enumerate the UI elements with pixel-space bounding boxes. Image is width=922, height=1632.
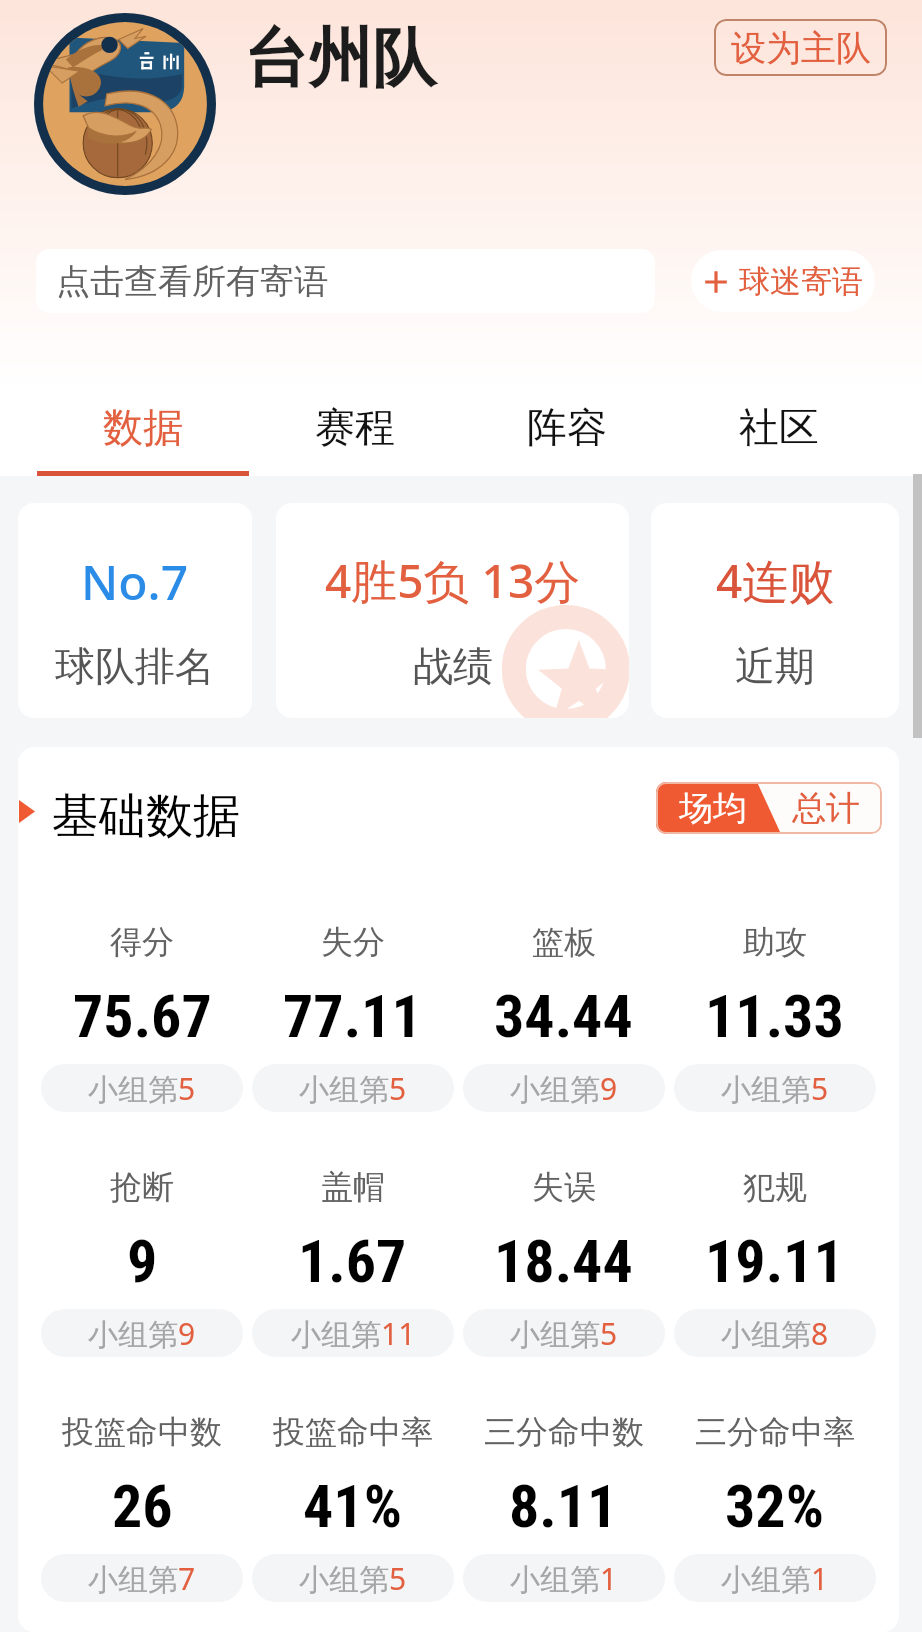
staticText: 小组第11 — [291, 1313, 416, 1354]
staticText: 18.44 — [494, 1226, 633, 1296]
button[interactable]: 赛程 — [249, 402, 461, 476]
staticText: 台州队 — [244, 18, 436, 99]
staticText: 26 — [112, 1471, 173, 1541]
staticText: 球迷寄语 — [739, 262, 863, 301]
staticText: 41% — [303, 1471, 402, 1541]
staticText: 近期 — [735, 641, 815, 691]
staticText: 抢断 — [110, 1167, 174, 1207]
staticText: 1.67 — [298, 1226, 407, 1296]
staticText: 数据 — [103, 402, 183, 452]
staticText: 失分 — [321, 922, 385, 962]
staticText: 小组第8 — [721, 1313, 829, 1354]
staticText: 赛程 — [315, 402, 395, 452]
staticText: 小组第1 — [510, 1558, 618, 1599]
button[interactable]: 数据 — [37, 402, 249, 476]
staticText: 小组第7 — [88, 1558, 196, 1599]
staticText: 小组第5 — [88, 1068, 196, 1109]
staticText: 投篮命中数 — [62, 1412, 222, 1452]
staticText: 4胜5负 13分 — [325, 549, 581, 612]
staticText: 小组第5 — [299, 1068, 407, 1109]
staticText: 篮板 — [532, 922, 596, 962]
button[interactable]: 阵容 — [461, 402, 673, 476]
staticText: 三分命中率 — [695, 1412, 855, 1452]
other: Add fan message — [704, 270, 728, 294]
other: Team logo — [34, 13, 216, 195]
staticText: 小组第1 — [721, 1558, 829, 1599]
staticText: 小组第9 — [510, 1068, 618, 1109]
staticText: 犯规 — [743, 1167, 807, 1207]
staticText: 8.11 — [509, 1471, 618, 1541]
button[interactable]: 4连败 — [651, 503, 899, 718]
staticText: 小组第5 — [721, 1068, 829, 1109]
staticText: 点击查看所有寄语 — [56, 260, 328, 303]
staticText: 阵容 — [527, 402, 607, 452]
staticText: 投篮命中率 — [273, 1412, 433, 1452]
staticText: 战绩 — [413, 641, 493, 691]
staticText: 11.33 — [705, 981, 844, 1051]
button[interactable]: 4胜5负 13分 — [276, 503, 629, 718]
staticText: 34.44 — [494, 981, 633, 1051]
staticText: 社区 — [739, 402, 819, 452]
button[interactable]: No.7 — [18, 503, 252, 718]
staticText: 得分 — [110, 922, 174, 962]
staticText: 小组第9 — [88, 1313, 196, 1354]
staticText: 77.11 — [283, 981, 422, 1051]
button[interactable]: 设为主队 — [714, 19, 887, 76]
staticText: 小组第5 — [510, 1313, 618, 1354]
staticText: 基础数据 — [52, 787, 240, 846]
staticText: 4连败 — [716, 549, 835, 612]
staticText: 三分命中数 — [484, 1412, 644, 1452]
staticText: 助攻 — [743, 922, 807, 962]
staticText: 盖帽 — [321, 1167, 385, 1207]
staticText: 32% — [725, 1471, 824, 1541]
staticText: 19.11 — [705, 1226, 844, 1296]
staticText: 总计 — [792, 787, 860, 830]
staticText: 小组第5 — [299, 1558, 407, 1599]
button[interactable]: Add fan message — [691, 250, 875, 312]
staticText: 球队排名 — [55, 641, 215, 691]
staticText: 75.67 — [73, 981, 212, 1051]
button[interactable]: 总计 — [769, 782, 882, 834]
button[interactable]: 场均 — [656, 782, 769, 834]
staticText: 设为主队 — [731, 26, 871, 70]
button[interactable]: 点击查看所有寄语 — [36, 249, 655, 313]
staticText: 场均 — [679, 787, 747, 830]
staticText: 失误 — [532, 1167, 596, 1207]
staticText: No.7 — [81, 549, 189, 614]
staticText: 9 — [127, 1226, 158, 1296]
button[interactable]: 社区 — [673, 402, 885, 476]
